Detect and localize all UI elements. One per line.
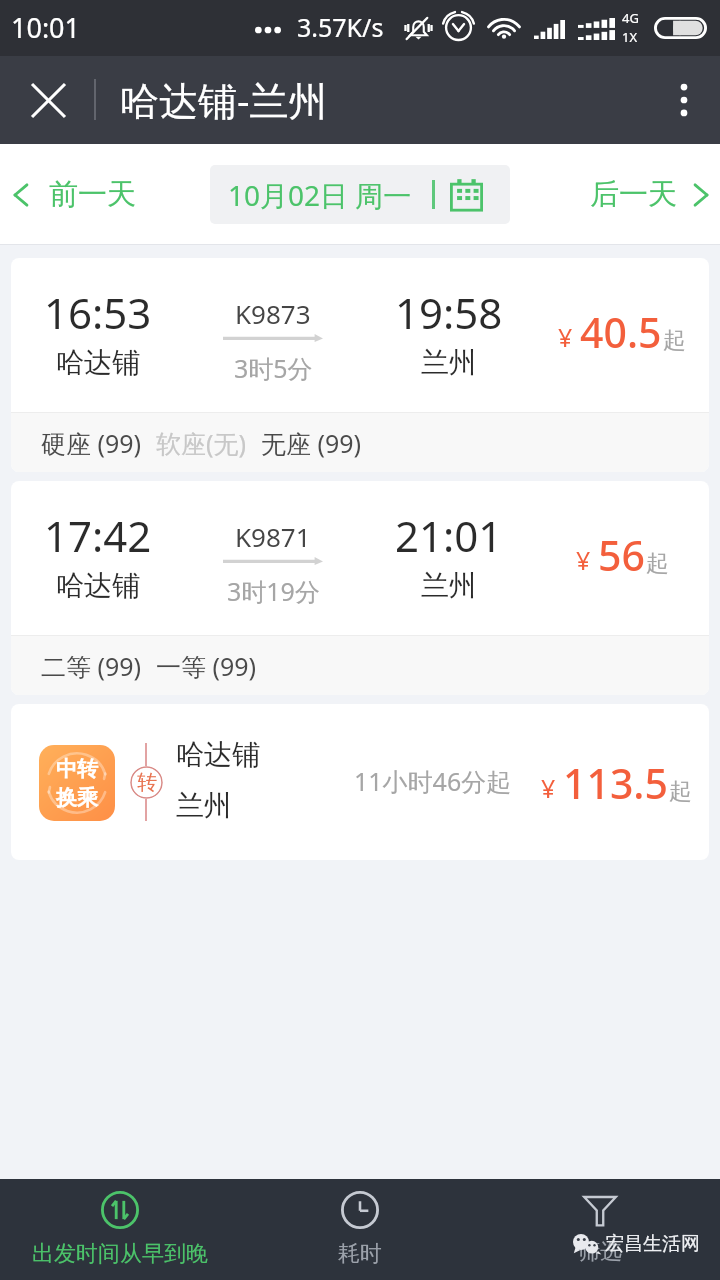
staticText: 出发时间从早到晚: [32, 1240, 208, 1268]
staticText: 耗时: [338, 1240, 382, 1268]
staticText: 11小时46分起: [354, 764, 512, 798]
staticText: 换乘: [56, 785, 98, 811]
staticText: ¥: [558, 320, 573, 354]
staticText: 兰州: [421, 568, 477, 603]
staticText: 17:42: [44, 507, 152, 564]
staticText: 无座 (99): [261, 426, 362, 460]
staticText: 起: [669, 777, 692, 806]
button[interactable]: 17:42: [11, 481, 709, 695]
staticText: 21:01: [395, 507, 503, 564]
button[interactable]: 后一天: [579, 162, 720, 227]
staticText: 硬座 (99): [41, 426, 142, 460]
button[interactable]: 筛选: [480, 1179, 720, 1280]
staticText: 10:01: [11, 9, 81, 46]
staticText: 哈达铺: [56, 568, 140, 603]
staticText: 起: [663, 326, 686, 355]
staticText: 哈达铺: [176, 737, 260, 772]
staticText: 3时5分: [234, 351, 313, 385]
staticText: 兰州: [421, 345, 477, 380]
staticText: 4G: [622, 9, 639, 27]
staticText: 113.5: [563, 755, 668, 811]
staticText: 软座(无): [156, 426, 247, 460]
staticText: 二等 (99): [41, 649, 142, 683]
button[interactable]: Close: [12, 64, 84, 136]
staticText: 筛选: [578, 1238, 622, 1266]
staticText: 转: [137, 770, 157, 795]
staticText: 56: [598, 527, 645, 583]
button[interactable]: 耗时: [240, 1179, 480, 1280]
staticText: 前一天: [49, 176, 136, 213]
button[interactable]: 16:53: [11, 258, 709, 472]
staticText: 起: [646, 549, 669, 578]
button[interactable]: More options: [648, 64, 720, 136]
staticText: 1X: [622, 28, 638, 46]
button[interactable]: 10月02日 周一: [210, 165, 510, 224]
staticText: 哈达铺-兰州: [120, 73, 328, 126]
staticText: 哈达铺: [56, 345, 140, 380]
staticText: 40.5: [580, 304, 662, 360]
staticText: K9871: [235, 519, 311, 554]
staticText: 10月02日 周一: [228, 176, 412, 214]
staticText: ¥: [541, 771, 556, 805]
staticText: 一等 (99): [156, 649, 257, 683]
button[interactable]: 中转: [11, 704, 709, 860]
staticText: ¥: [576, 543, 591, 577]
staticText: 16:53: [44, 284, 152, 341]
staticText: 中转: [56, 756, 98, 782]
button[interactable]: 出发时间从早到晚: [0, 1179, 240, 1280]
button[interactable]: 前一天: [0, 162, 149, 227]
staticText: 3时19分: [227, 574, 320, 608]
staticText: K9873: [235, 296, 311, 331]
staticText: 3.57K/s: [297, 10, 384, 44]
staticText: 19:58: [395, 284, 503, 341]
staticText: 宏昌生活网: [605, 1232, 700, 1256]
staticText: 兰州: [176, 788, 232, 823]
staticText: 后一天: [590, 176, 677, 213]
